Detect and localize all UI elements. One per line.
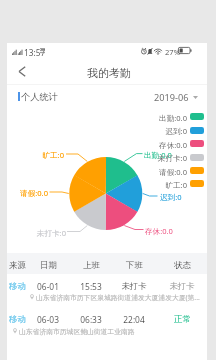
- staticText: 请假:0.0: [159, 167, 187, 177]
- staticText: 13:57: [24, 47, 46, 58]
- staticText: 我的考勤: [87, 66, 131, 80]
- staticText: 出勤:0.0: [144, 150, 172, 160]
- button[interactable]: [7, 277, 207, 293]
- staticText: 06-03: [37, 314, 59, 325]
- staticText: 存休:0.0: [159, 140, 187, 150]
- button[interactable]: 返回: [11, 61, 32, 81]
- staticText: 15:53: [80, 281, 102, 292]
- button[interactable]: 2019-06: [154, 90, 198, 104]
- staticText: 正常: [174, 314, 191, 325]
- staticText: 未打卡: [169, 281, 195, 292]
- staticText: 上班: [83, 260, 100, 271]
- staticText: 个人统计: [21, 91, 58, 103]
- staticText: 山东省济南市历城区鲍山街道工业南路: [19, 327, 135, 336]
- staticText: 迟到:0: [160, 192, 182, 202]
- staticText: 未打卡:0: [157, 153, 187, 163]
- button[interactable]: [7, 310, 207, 326]
- staticText: 2019-06: [154, 91, 189, 104]
- staticText: 迟到:0: [165, 126, 187, 136]
- staticText: 旷工:0: [42, 150, 64, 160]
- staticText: 未打卡: [121, 281, 147, 292]
- staticText: 请假:0.0: [20, 188, 48, 198]
- staticText: 旷工:0: [165, 180, 187, 190]
- staticText: 状态: [174, 260, 191, 271]
- staticText: 下班: [126, 260, 143, 271]
- staticText: 22:04: [123, 314, 145, 325]
- staticText: 山东省济南市历下区泉城路街道浦发大厦浦发大厦(第...: [36, 293, 200, 302]
- staticText: 移动: [9, 281, 26, 292]
- staticText: 日期: [40, 260, 57, 271]
- staticText: 06-01: [37, 281, 59, 292]
- staticText: 06:33: [80, 314, 102, 325]
- staticText: 出勤:0.0: [159, 113, 187, 123]
- staticText: 移动: [9, 314, 26, 325]
- staticText: 27%: [165, 47, 180, 57]
- staticText: 存休:0.0: [145, 226, 173, 236]
- staticText: 来源: [9, 260, 26, 271]
- staticText: 未打卡:0: [36, 228, 66, 238]
